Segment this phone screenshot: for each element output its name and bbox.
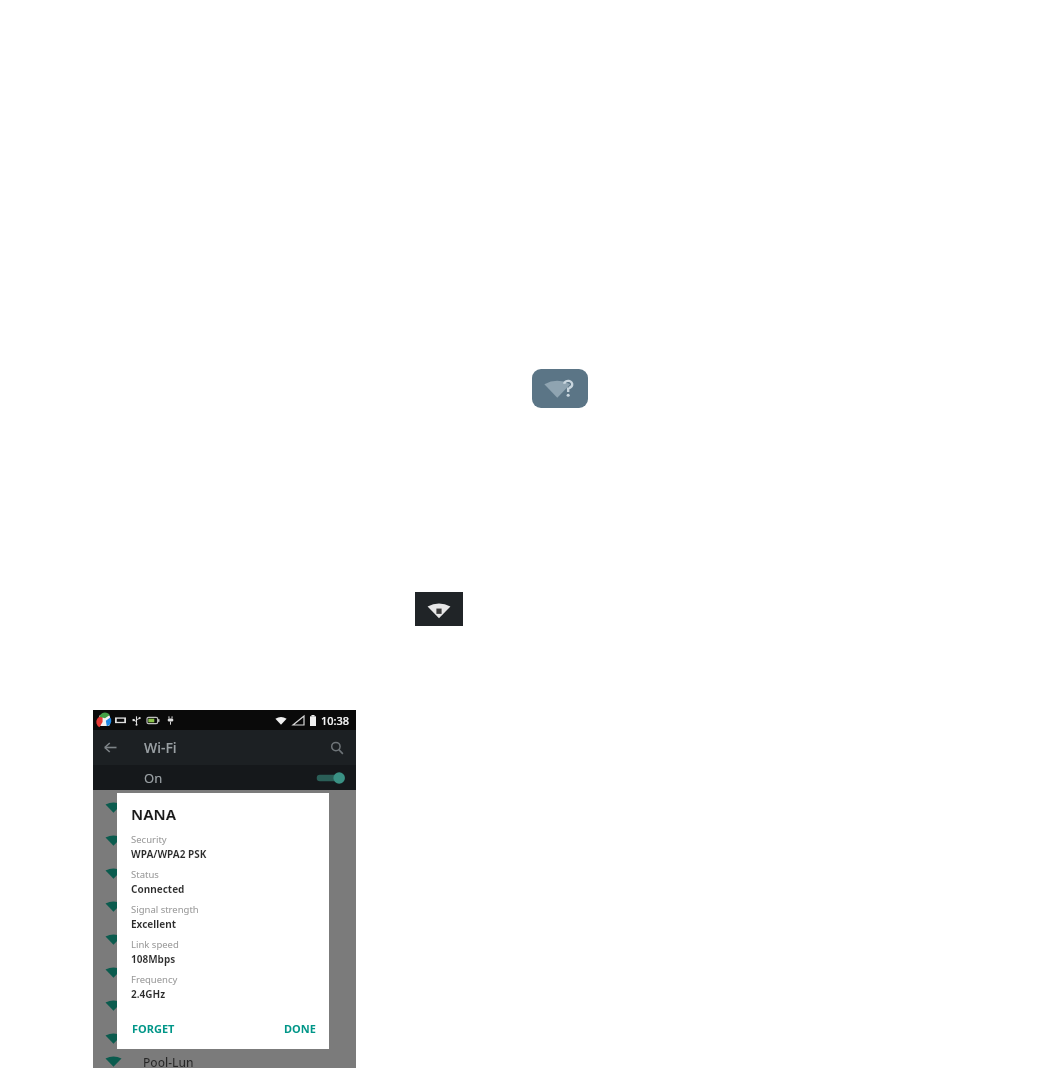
button[interactable]: Secured Wi-Fi: [415, 592, 463, 626]
button[interactable]: Pool-Lun: [93, 1054, 356, 1068]
button[interactable]: 360WiFi-C91D: [93, 1021, 356, 1054]
staticText: Excellent: [131, 917, 177, 931]
staticText: WPA/WPA2 PSK: [131, 847, 207, 861]
staticText: Status: [131, 868, 159, 881]
button[interactable]: On: [93, 765, 356, 790]
button[interactable]: [93, 790, 356, 823]
button[interactable]: [93, 856, 356, 889]
staticText: Wi-Fi: [144, 738, 177, 757]
button[interactable]: Search: [319, 730, 354, 765]
staticText: On: [144, 769, 163, 787]
button[interactable]: FORGET: [131, 1018, 176, 1039]
staticText: FORGET: [132, 1021, 175, 1036]
button[interactable]: [93, 955, 356, 988]
button[interactable]: [93, 823, 356, 856]
button[interactable]: 360WiFi-VC: [93, 988, 356, 1021]
button[interactable]: Back: [93, 730, 128, 765]
staticText: 10:38: [321, 713, 350, 728]
staticText: Pool-Lun: [143, 1054, 194, 1068]
staticText: 108Mbps: [131, 952, 176, 966]
staticText: NANA: [131, 804, 177, 824]
button[interactable]: [93, 922, 356, 955]
button[interactable]: [93, 889, 356, 922]
staticText: Signal strength: [131, 903, 199, 916]
staticText: 2.4GHz: [131, 987, 166, 1001]
staticText: Frequency: [131, 973, 178, 986]
staticText: Connected: [131, 882, 185, 896]
button[interactable]: DONE: [283, 1018, 317, 1039]
button[interactable]: Wi-Fi unknown: [532, 369, 588, 408]
staticText: DONE: [284, 1021, 316, 1036]
staticText: 360WiFi-VC: [143, 997, 207, 1013]
staticText: Security: [131, 833, 167, 846]
staticText: Link speed: [131, 938, 179, 951]
staticText: 360WiFi-C91D: [143, 1030, 222, 1046]
